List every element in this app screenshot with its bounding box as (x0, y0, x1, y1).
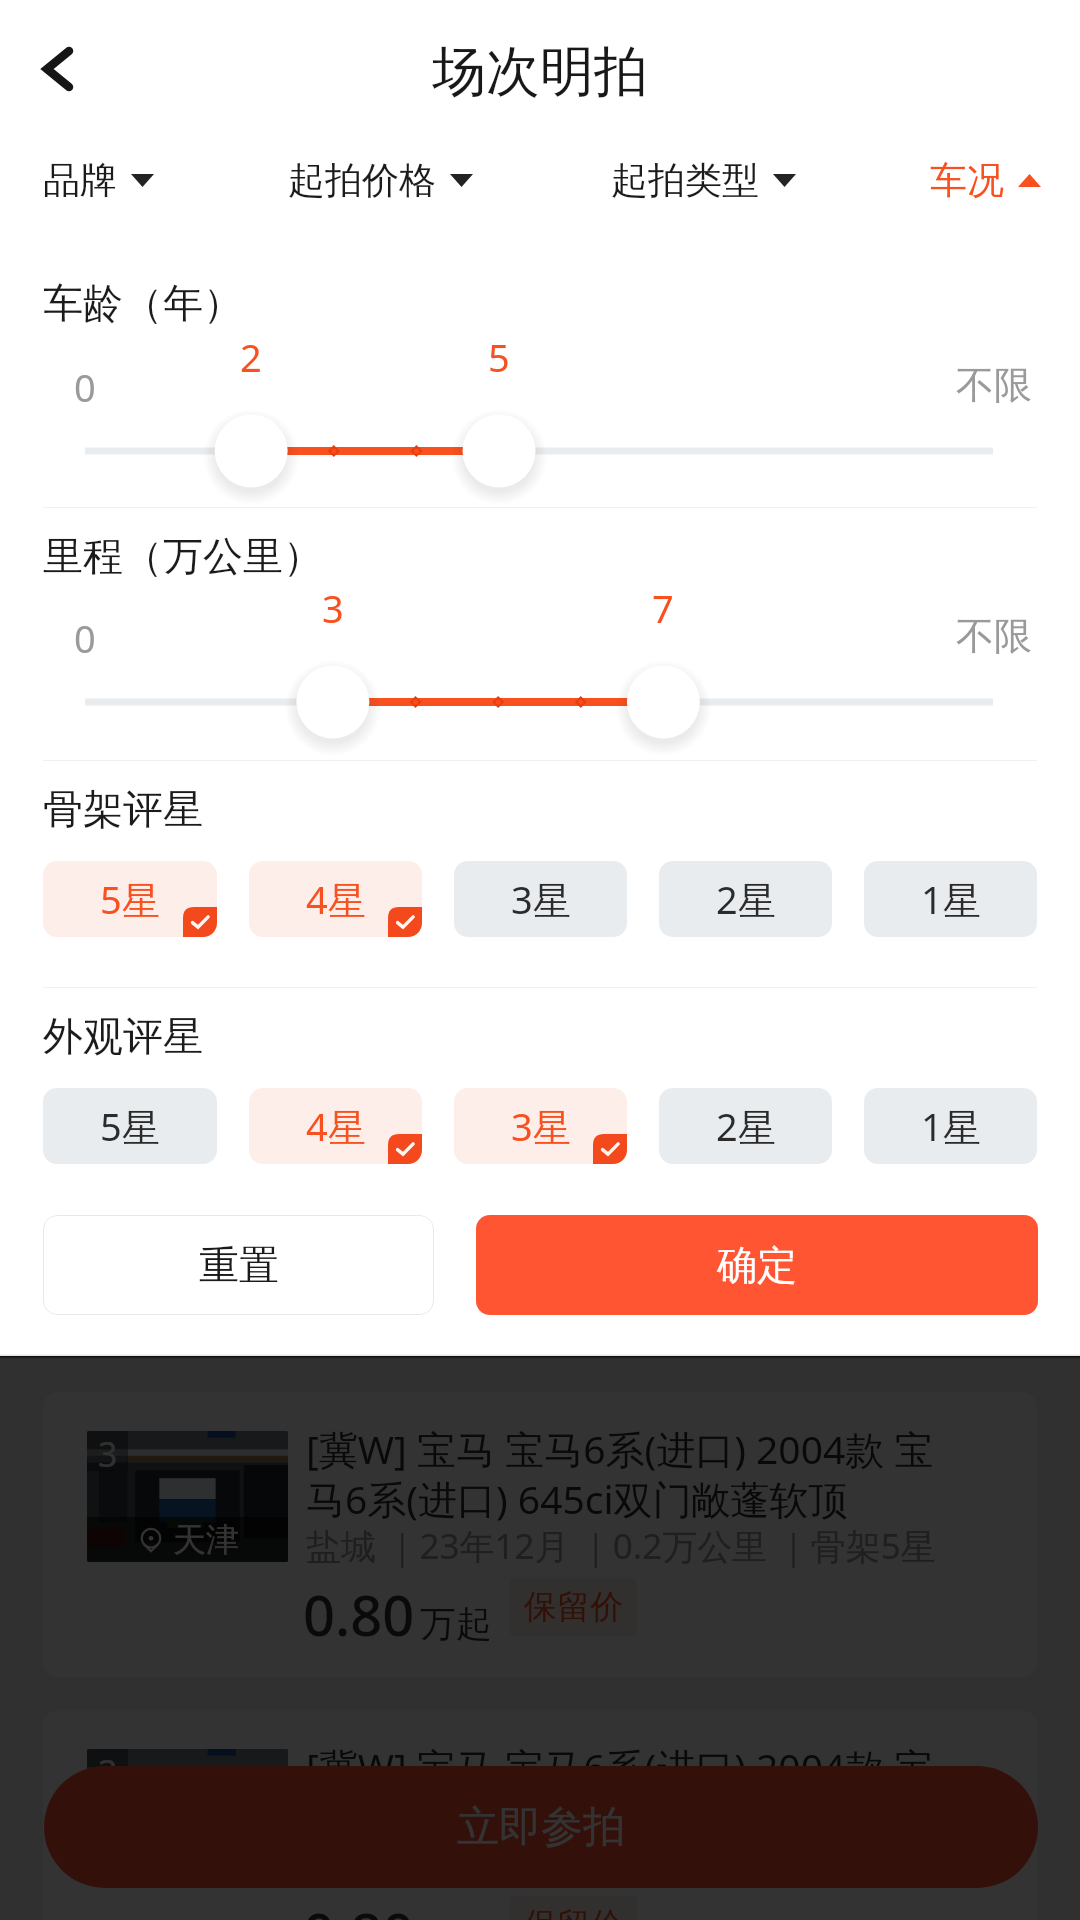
staticText: [冀W] 宝马 宝马6系(进口) 2004款 宝 (306, 1740, 934, 1793)
staticText: 0.80 (303, 1576, 415, 1652)
staticText: 7 (652, 582, 674, 634)
staticText: 马6系(进口) 645ci双门敞蓬软顶 (306, 1472, 848, 1525)
button[interactable]: 1星 (864, 861, 1037, 937)
staticText: 车龄（年） (43, 278, 243, 328)
button[interactable]: 2星 (659, 1088, 832, 1164)
button[interactable]: 3星 (454, 1088, 627, 1164)
staticText: 万起 (420, 1601, 492, 1646)
button[interactable]: 确定 (476, 1215, 1038, 1315)
staticText: 1星 (921, 873, 981, 925)
staticText: 确定 (717, 1240, 797, 1290)
staticText: 2 (240, 331, 262, 383)
staticText: 盐城 ｜23年12月 ｜0.2万公里 ｜骨架5星 (306, 1522, 936, 1570)
staticText: 3星 (511, 1100, 571, 1152)
button[interactable]: 返回 (8, 19, 108, 119)
staticText: 5星 (100, 873, 160, 925)
button[interactable]: 车况 (930, 146, 1041, 214)
staticText: 4星 (306, 873, 366, 925)
staticText: 天津 (173, 1519, 239, 1561)
staticText: 3星 (511, 873, 571, 925)
button[interactable]: 立即参拍 (44, 1766, 1038, 1888)
staticText: 品牌 (43, 157, 117, 204)
staticText: 2星 (716, 873, 776, 925)
button[interactable]: 品牌 (43, 146, 154, 214)
staticText: 3 (322, 582, 344, 634)
staticText: 重置 (199, 1240, 279, 1290)
staticText: 3 (98, 1749, 118, 1789)
staticText: 4星 (306, 1100, 366, 1152)
staticText: 0 (74, 361, 96, 413)
staticText: 3 (98, 1431, 118, 1471)
button[interactable]: 4星 (249, 1088, 422, 1164)
staticText: 里程（万公里） (43, 531, 323, 581)
staticText: 骨架评星 (43, 784, 203, 834)
staticText: [冀W] 宝马 宝马6系(进口) 2004款 宝 (306, 1422, 934, 1475)
staticText: 起拍类型 (611, 157, 759, 204)
staticText: 1星 (921, 1100, 981, 1152)
button[interactable]: 4星 (249, 861, 422, 937)
button[interactable]: 1星 (864, 1088, 1037, 1164)
staticText: 场次明拍 (432, 38, 648, 106)
staticText: 马6系(进口) 645ci双门敞蓬软顶 (306, 1790, 848, 1843)
staticText: 不限 (956, 612, 1032, 660)
staticText: 车况 (930, 157, 1004, 204)
button[interactable]: 3星 (454, 861, 627, 937)
staticText: 保留价 (524, 1586, 623, 1628)
button[interactable]: 重置 (43, 1215, 434, 1315)
button[interactable]: 2星 (659, 861, 832, 937)
staticText: 0 (74, 612, 96, 664)
staticText: 不限 (956, 361, 1032, 409)
staticText: 外观评星 (43, 1011, 203, 1061)
button[interactable]: 起拍价格 (288, 146, 473, 214)
staticText: 盐城 ｜23年12月 ｜0.2万公里 ｜骨架5星 (306, 1840, 936, 1888)
staticText: 0.80 (303, 1894, 415, 1920)
button[interactable]: 起拍类型 (611, 146, 796, 214)
staticText: 5 (488, 331, 510, 383)
button[interactable]: 5星 (43, 1088, 217, 1164)
staticText: 5星 (100, 1100, 160, 1152)
staticText: 立即参拍 (457, 1801, 625, 1854)
button[interactable]: 5星 (43, 861, 217, 937)
staticText: 保留价 (524, 1904, 623, 1920)
staticText: 2星 (716, 1100, 776, 1152)
staticText: 起拍价格 (288, 157, 436, 204)
